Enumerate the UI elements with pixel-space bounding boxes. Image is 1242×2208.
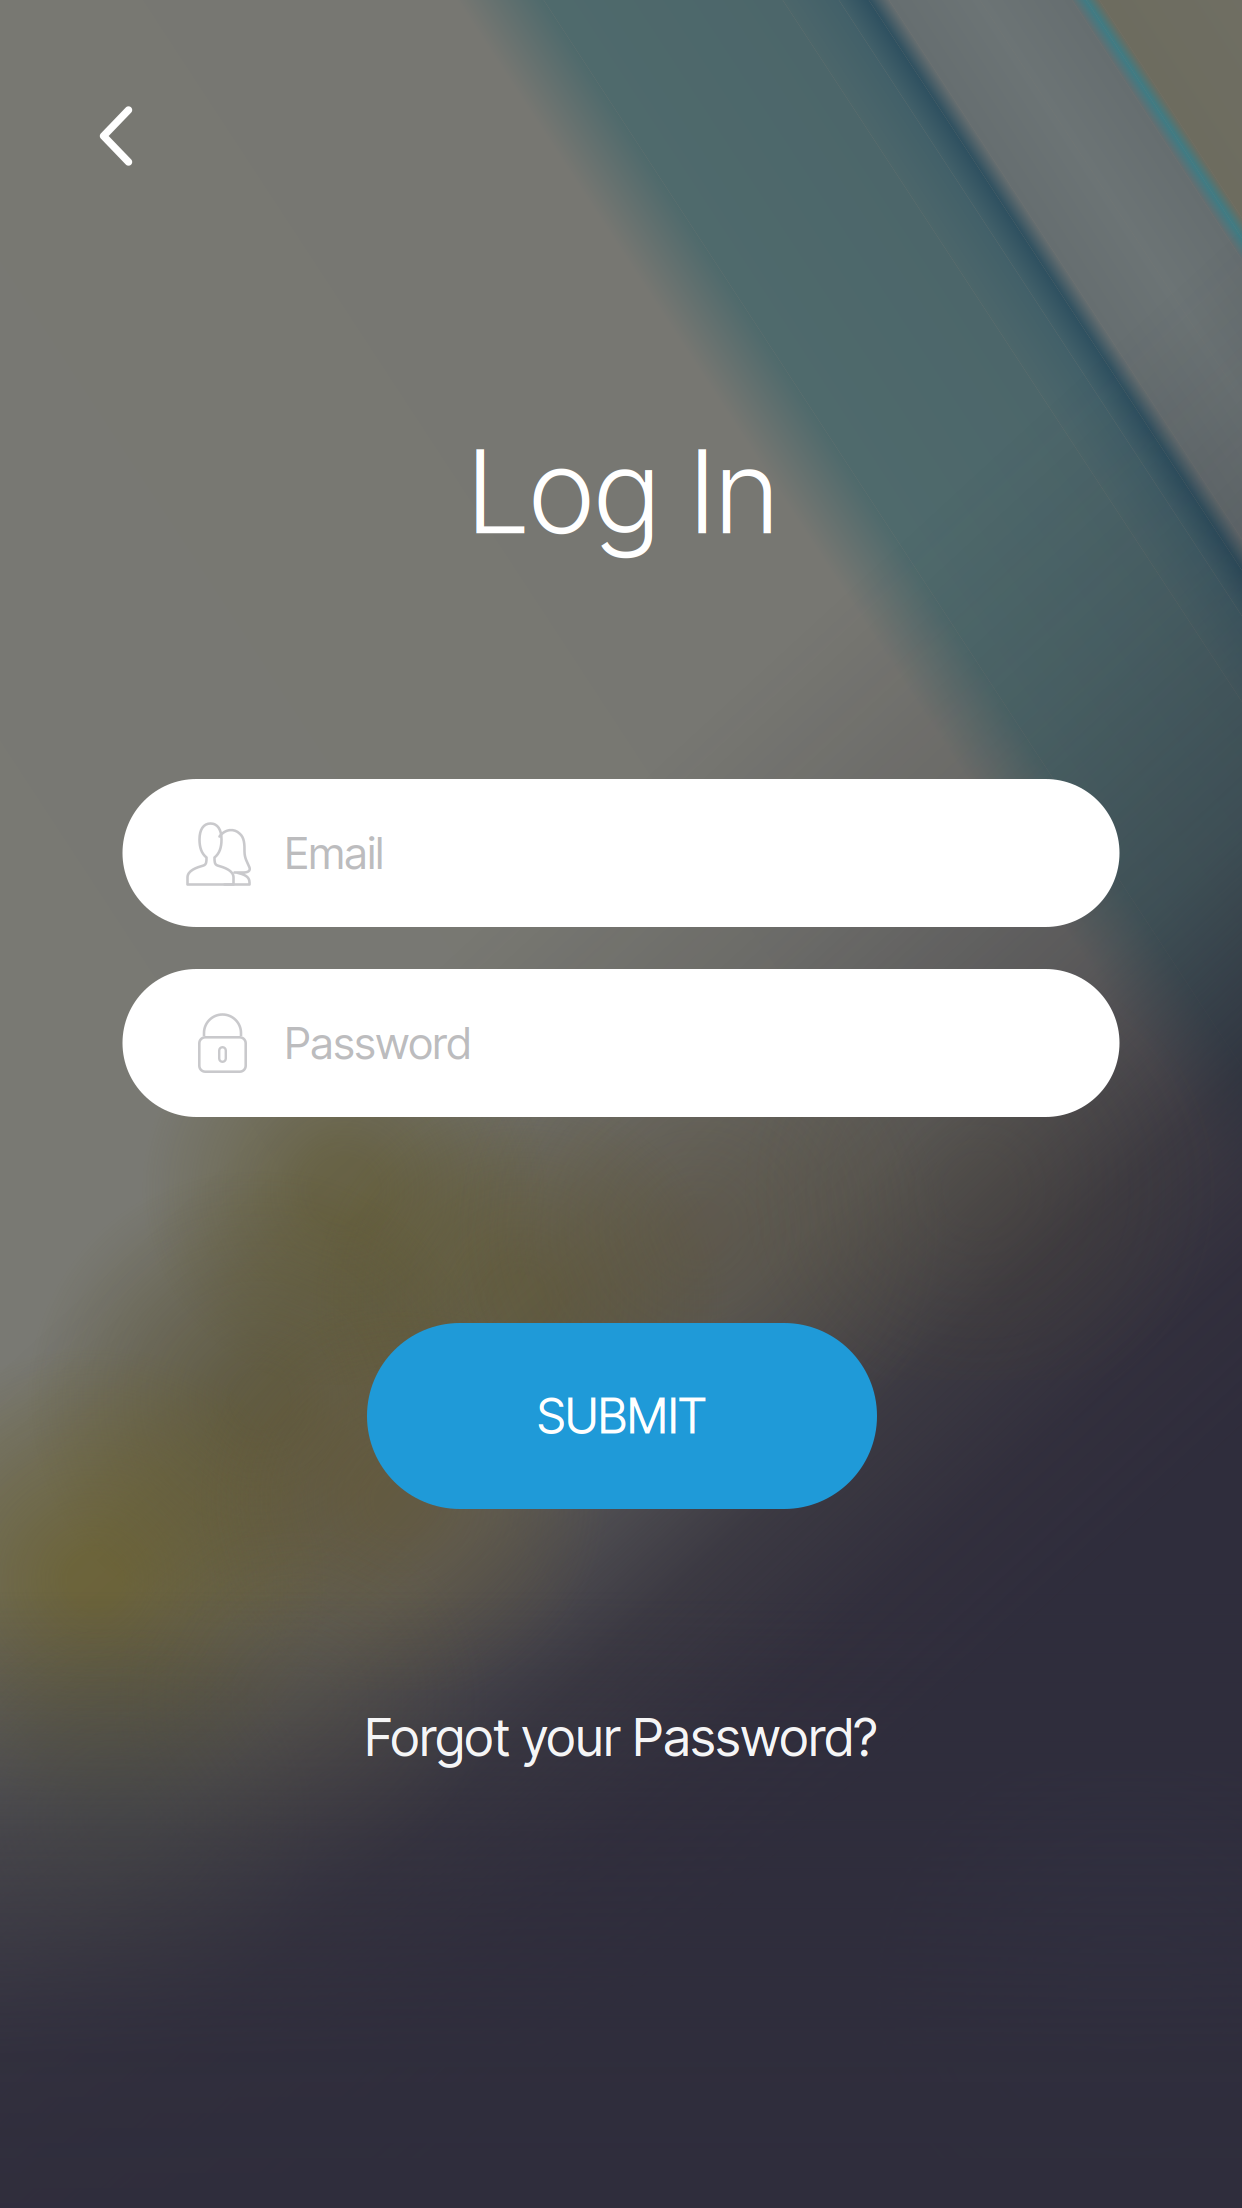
staticText: Email xyxy=(284,826,383,880)
button[interactable]: SUBMIT xyxy=(367,1323,877,1509)
staticText: Log In xyxy=(467,421,779,561)
button[interactable]: Forgot your Password? xyxy=(348,1691,893,1782)
button[interactable]: Back xyxy=(64,84,168,188)
staticText: Password xyxy=(284,1016,471,1070)
staticText: SUBMIT xyxy=(537,1387,707,1445)
staticText: Forgot your Password? xyxy=(364,1705,877,1768)
